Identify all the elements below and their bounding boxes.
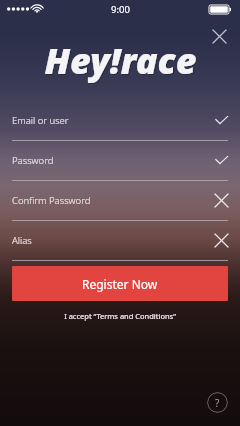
staticText: Hey!race	[44, 36, 197, 85]
button[interactable]: Close	[207, 24, 231, 48]
staticText: Password	[12, 154, 215, 167]
button[interactable]: Confirm Password	[0, 181, 240, 221]
staticText: ?	[215, 396, 220, 410]
staticText: 9:00	[111, 3, 130, 16]
staticText: Hey!race	[45, 37, 198, 86]
button[interactable]: Email or user	[0, 101, 240, 141]
button[interactable]: I accept “Terms and Conditions”	[56, 308, 184, 324]
button[interactable]: Register Now	[12, 266, 228, 301]
staticText: I accept “Terms and Conditions”	[64, 311, 176, 321]
button[interactable]: Password	[0, 141, 240, 181]
button[interactable]: Alias	[0, 221, 240, 261]
staticText: Register Now	[82, 276, 158, 292]
staticText: Confirm Password	[12, 194, 215, 207]
button[interactable]: Help	[207, 392, 228, 413]
staticText: Email or user	[12, 114, 215, 127]
staticText: Alias	[12, 234, 215, 247]
